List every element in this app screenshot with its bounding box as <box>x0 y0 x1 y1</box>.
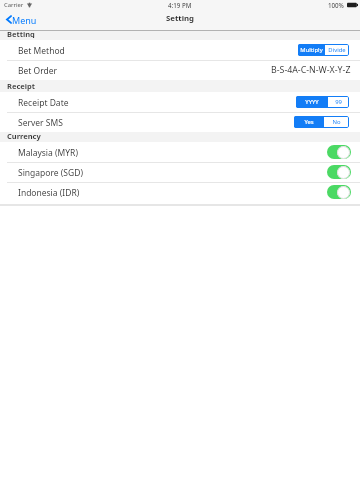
staticText: Betting <box>7 29 35 38</box>
staticText: Menu <box>12 14 37 26</box>
button[interactable]: Toggle on <box>327 185 351 199</box>
staticText: Yes <box>304 118 314 126</box>
staticText: Currency <box>7 131 41 141</box>
staticText: 99 <box>335 98 342 106</box>
staticText: Malaysia (MYR) <box>18 147 78 159</box>
staticText: 4:19 PM <box>168 1 192 9</box>
staticText: Bet Method <box>18 45 65 57</box>
button[interactable]: Singapore (SGD) <box>0 162 360 182</box>
button[interactable]: Multiply <box>298 44 325 56</box>
staticText: Bet Order <box>18 65 58 77</box>
staticText: Setting <box>166 13 195 24</box>
staticText: No <box>332 118 341 126</box>
staticText: Multiply <box>300 46 323 54</box>
staticText: Server SMS <box>18 117 63 129</box>
button[interactable]: Toggle on <box>327 145 351 159</box>
staticText: Indonesia (IDR) <box>18 187 80 199</box>
staticText: B-S-4A-C-N-W-X-Y-Z <box>271 64 351 76</box>
staticText: 100% <box>328 1 344 9</box>
staticText: Receipt <box>7 81 35 91</box>
button[interactable]: Bet Method <box>0 40 360 60</box>
button[interactable]: Menu <box>6 10 37 31</box>
button[interactable]: Malaysia (MYR) <box>0 142 360 162</box>
button[interactable]: Server SMS <box>0 112 360 132</box>
button[interactable]: Receipt Date <box>0 92 360 112</box>
button[interactable]: Yes <box>294 116 324 128</box>
button[interactable]: YYYY <box>296 96 328 108</box>
staticText: YYYY <box>305 98 319 106</box>
staticText: Divide <box>328 46 346 54</box>
staticText: Singapore (SGD) <box>18 167 83 179</box>
button[interactable]: No <box>324 116 349 128</box>
staticText: Receipt Date <box>18 97 69 109</box>
button[interactable]: 99 <box>328 96 349 108</box>
button[interactable]: Toggle on <box>327 165 351 179</box>
button[interactable]: Divide <box>325 44 349 56</box>
button[interactable]: Indonesia (IDR) <box>0 182 360 202</box>
staticText: Carrier <box>4 1 24 9</box>
button[interactable]: Bet Order <box>0 60 360 80</box>
